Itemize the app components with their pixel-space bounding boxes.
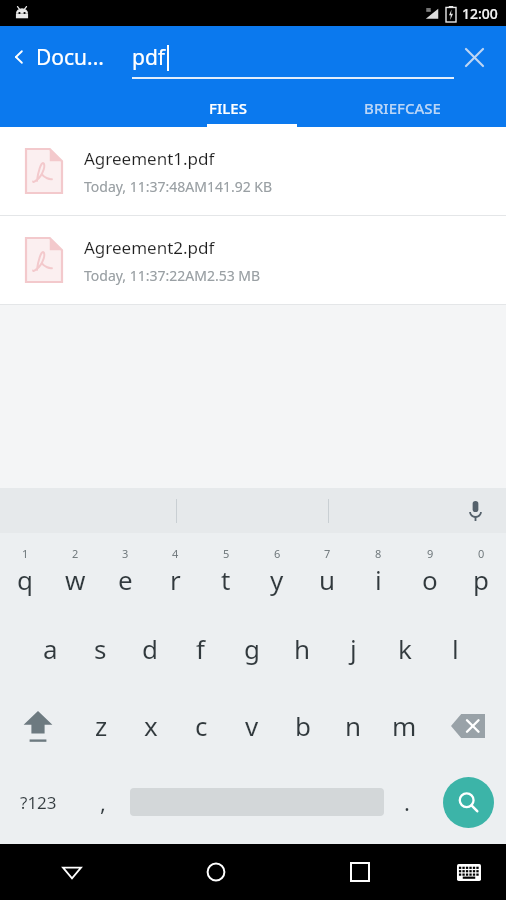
staticText: BRIEFCASE bbox=[364, 98, 441, 118]
staticText: p bbox=[473, 562, 489, 597]
staticText: e bbox=[118, 562, 133, 597]
staticText: 12:00 bbox=[462, 4, 498, 23]
staticText: z bbox=[95, 708, 108, 743]
button[interactable]: Agreement2.pdf bbox=[0, 216, 506, 304]
button[interactable]: 1 bbox=[0, 533, 50, 610]
button[interactable]: , bbox=[76, 764, 130, 840]
button[interactable]: . bbox=[384, 764, 430, 840]
staticText: 0 bbox=[478, 546, 485, 561]
staticText: 8 bbox=[375, 546, 382, 561]
button[interactable]: 9 bbox=[404, 533, 455, 610]
staticText: r bbox=[170, 562, 181, 597]
button[interactable]: m bbox=[379, 687, 430, 764]
button[interactable]: pdf bbox=[132, 33, 454, 81]
staticText: Today, 11:37:48AM141.92 KB bbox=[84, 177, 273, 196]
staticText: s bbox=[94, 631, 107, 666]
staticText: 4 bbox=[172, 546, 179, 561]
staticText: n bbox=[345, 708, 362, 743]
staticText: 1 bbox=[22, 546, 29, 561]
button[interactable]: Recents bbox=[288, 844, 432, 900]
button[interactable]: Search bbox=[430, 764, 506, 840]
staticText: f bbox=[196, 631, 205, 666]
button[interactable]: ?123 bbox=[0, 764, 76, 840]
button[interactable]: 6 bbox=[251, 533, 302, 610]
button[interactable]: c bbox=[176, 687, 226, 764]
button[interactable]: Home bbox=[144, 844, 288, 900]
button[interactable]: Hide keyboard bbox=[432, 844, 506, 900]
staticText: 9 bbox=[427, 546, 434, 561]
staticText: j bbox=[350, 631, 357, 666]
button[interactable]: h bbox=[277, 610, 328, 687]
button[interactable]: j bbox=[328, 610, 379, 687]
staticText: 6 bbox=[274, 546, 281, 561]
staticText: w bbox=[65, 562, 86, 597]
button[interactable]: Docu... bbox=[0, 33, 110, 81]
button[interactable]: k bbox=[379, 610, 430, 687]
button[interactable]: 7 bbox=[302, 533, 353, 610]
staticText: ?123 bbox=[20, 791, 57, 814]
staticText: t bbox=[221, 562, 231, 597]
staticText: b bbox=[295, 708, 311, 743]
staticText: FILES bbox=[209, 98, 247, 118]
staticText: l bbox=[452, 631, 459, 666]
button[interactable]: Voice input bbox=[456, 492, 494, 530]
button[interactable]: s bbox=[75, 610, 125, 687]
staticText: q bbox=[17, 562, 33, 597]
staticText: o bbox=[422, 562, 438, 597]
staticText: pdf bbox=[132, 43, 166, 72]
staticText: 3 bbox=[122, 546, 129, 561]
button[interactable]: FILES bbox=[158, 88, 298, 127]
staticText: , bbox=[100, 787, 106, 817]
staticText: x bbox=[144, 708, 158, 743]
staticText: 5 bbox=[223, 546, 230, 561]
button[interactable]: BRIEFCASE bbox=[298, 88, 506, 127]
button[interactable]: a bbox=[25, 610, 75, 687]
button[interactable]: 8 bbox=[353, 533, 404, 610]
button[interactable]: z bbox=[76, 687, 126, 764]
staticText: 7 bbox=[324, 546, 331, 561]
button[interactable]: Agreement1.pdf bbox=[0, 127, 506, 215]
staticText: Docu... bbox=[36, 43, 104, 72]
staticText: h bbox=[294, 631, 311, 666]
button[interactable]: Shift bbox=[0, 687, 76, 764]
staticText: c bbox=[195, 708, 208, 743]
button[interactable]: f bbox=[175, 610, 226, 687]
button[interactable]: 5 bbox=[200, 533, 251, 610]
button[interactable]: v bbox=[226, 687, 277, 764]
button[interactable]: 2 bbox=[50, 533, 100, 610]
button[interactable]: Backspace bbox=[430, 687, 506, 764]
button[interactable]: Space bbox=[130, 764, 384, 840]
staticText: y bbox=[270, 562, 284, 597]
staticText: g bbox=[244, 631, 260, 666]
button[interactable]: Clear search bbox=[454, 37, 494, 77]
button[interactable]: l bbox=[430, 610, 481, 687]
staticText: Agreement1.pdf bbox=[84, 147, 215, 170]
button[interactable]: d bbox=[125, 610, 175, 687]
staticText: a bbox=[43, 631, 58, 666]
button[interactable]: 3 bbox=[100, 533, 150, 610]
staticText: v bbox=[245, 708, 259, 743]
staticText: . bbox=[404, 787, 410, 817]
staticText: 2 bbox=[72, 546, 79, 561]
staticText: Agreement2.pdf bbox=[84, 236, 215, 259]
button[interactable]: x bbox=[126, 687, 176, 764]
staticText: k bbox=[398, 631, 412, 666]
staticText: i bbox=[375, 562, 382, 597]
button[interactable]: n bbox=[328, 687, 379, 764]
button[interactable]: 4 bbox=[150, 533, 200, 610]
button[interactable]: b bbox=[277, 687, 328, 764]
staticText: Today, 11:37:22AM2.53 MB bbox=[84, 266, 261, 285]
staticText: m bbox=[392, 708, 417, 743]
staticText: d bbox=[142, 631, 158, 666]
button[interactable]: Back bbox=[0, 844, 144, 900]
button[interactable]: 0 bbox=[455, 533, 506, 610]
staticText: u bbox=[319, 562, 336, 597]
button[interactable]: g bbox=[226, 610, 277, 687]
